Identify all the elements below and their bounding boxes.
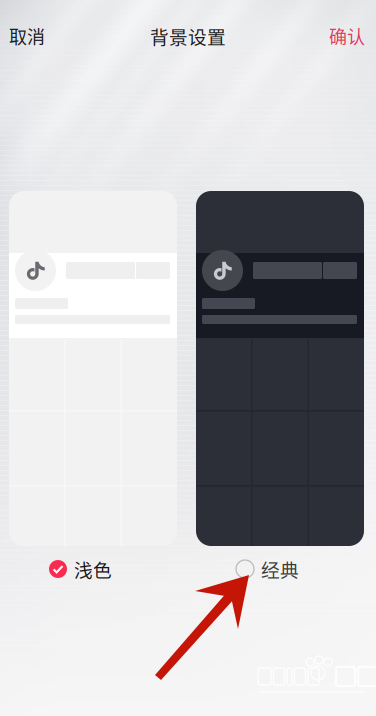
button[interactable]: 取消	[0, 18, 79, 54]
button[interactable]: 确认	[295, 18, 376, 54]
staticText: 经典	[261, 555, 299, 582]
staticText: 取消	[9, 23, 45, 49]
staticText: 背景设置	[150, 22, 226, 49]
button[interactable]: 经典	[236, 554, 366, 584]
button[interactable]: 浅色	[49, 554, 179, 584]
staticText: 确认	[329, 23, 365, 49]
staticText: 浅色	[74, 555, 112, 582]
